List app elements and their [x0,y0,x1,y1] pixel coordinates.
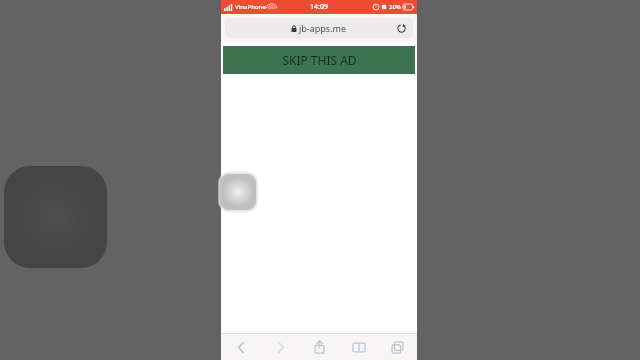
button[interactable]: Tabs [378,334,417,360]
button[interactable]: SKIP THIS AD [223,46,415,74]
staticText: 20% [389,3,401,11]
button[interactable]: jb-apps.me [225,18,413,38]
staticText: 14:09 [310,2,328,12]
button[interactable]: Share [300,334,339,360]
button[interactable]: Reload [394,21,408,35]
button[interactable]: Forward [261,334,300,360]
staticText: VinaPhone [235,3,266,11]
button[interactable]: Bookmarks [339,334,378,360]
button[interactable]: Back [221,334,261,360]
staticText: jb-apps.me [299,22,347,34]
staticText: SKIP THIS AD [282,52,357,68]
